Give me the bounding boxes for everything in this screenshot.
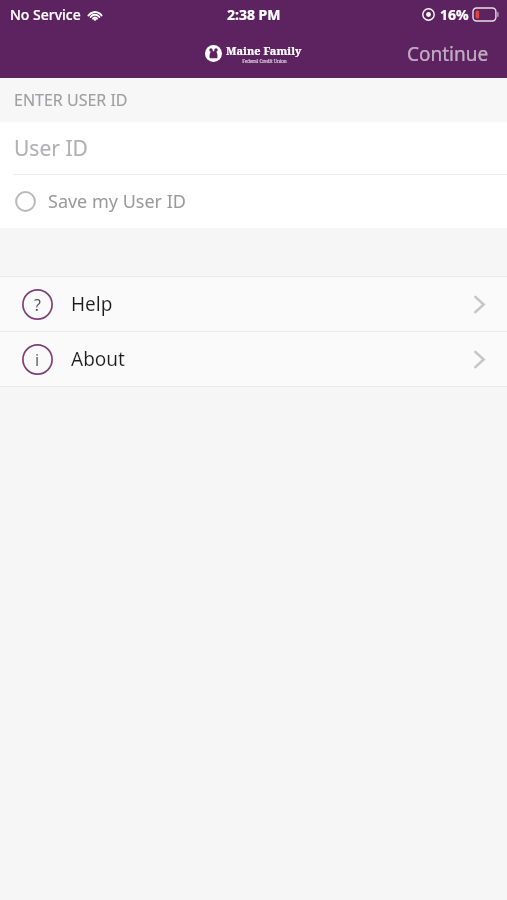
staticText: About	[71, 346, 125, 372]
button[interactable]: User ID	[0, 122, 507, 174]
button[interactable]: Continue	[389, 33, 507, 75]
button[interactable]: ?	[0, 277, 507, 331]
staticText: User ID	[14, 134, 88, 163]
staticText: ?	[34, 294, 41, 316]
other: Open	[474, 295, 485, 314]
staticText: i	[35, 349, 40, 371]
staticText: Help	[71, 291, 113, 317]
staticText: 16%	[440, 5, 469, 24]
staticText: Federal Credit Union	[242, 58, 287, 64]
staticText: 2:38 PM	[227, 5, 281, 24]
staticText: No Service	[10, 5, 81, 24]
staticText: Maine Family	[226, 43, 302, 58]
button[interactable]: i	[0, 332, 507, 386]
staticText: ENTER USER ID	[14, 89, 128, 111]
staticText: Save my User ID	[48, 189, 186, 214]
button[interactable]: Save my User ID	[0, 175, 507, 228]
staticText: Continue	[407, 41, 489, 67]
other: Open	[474, 350, 485, 369]
